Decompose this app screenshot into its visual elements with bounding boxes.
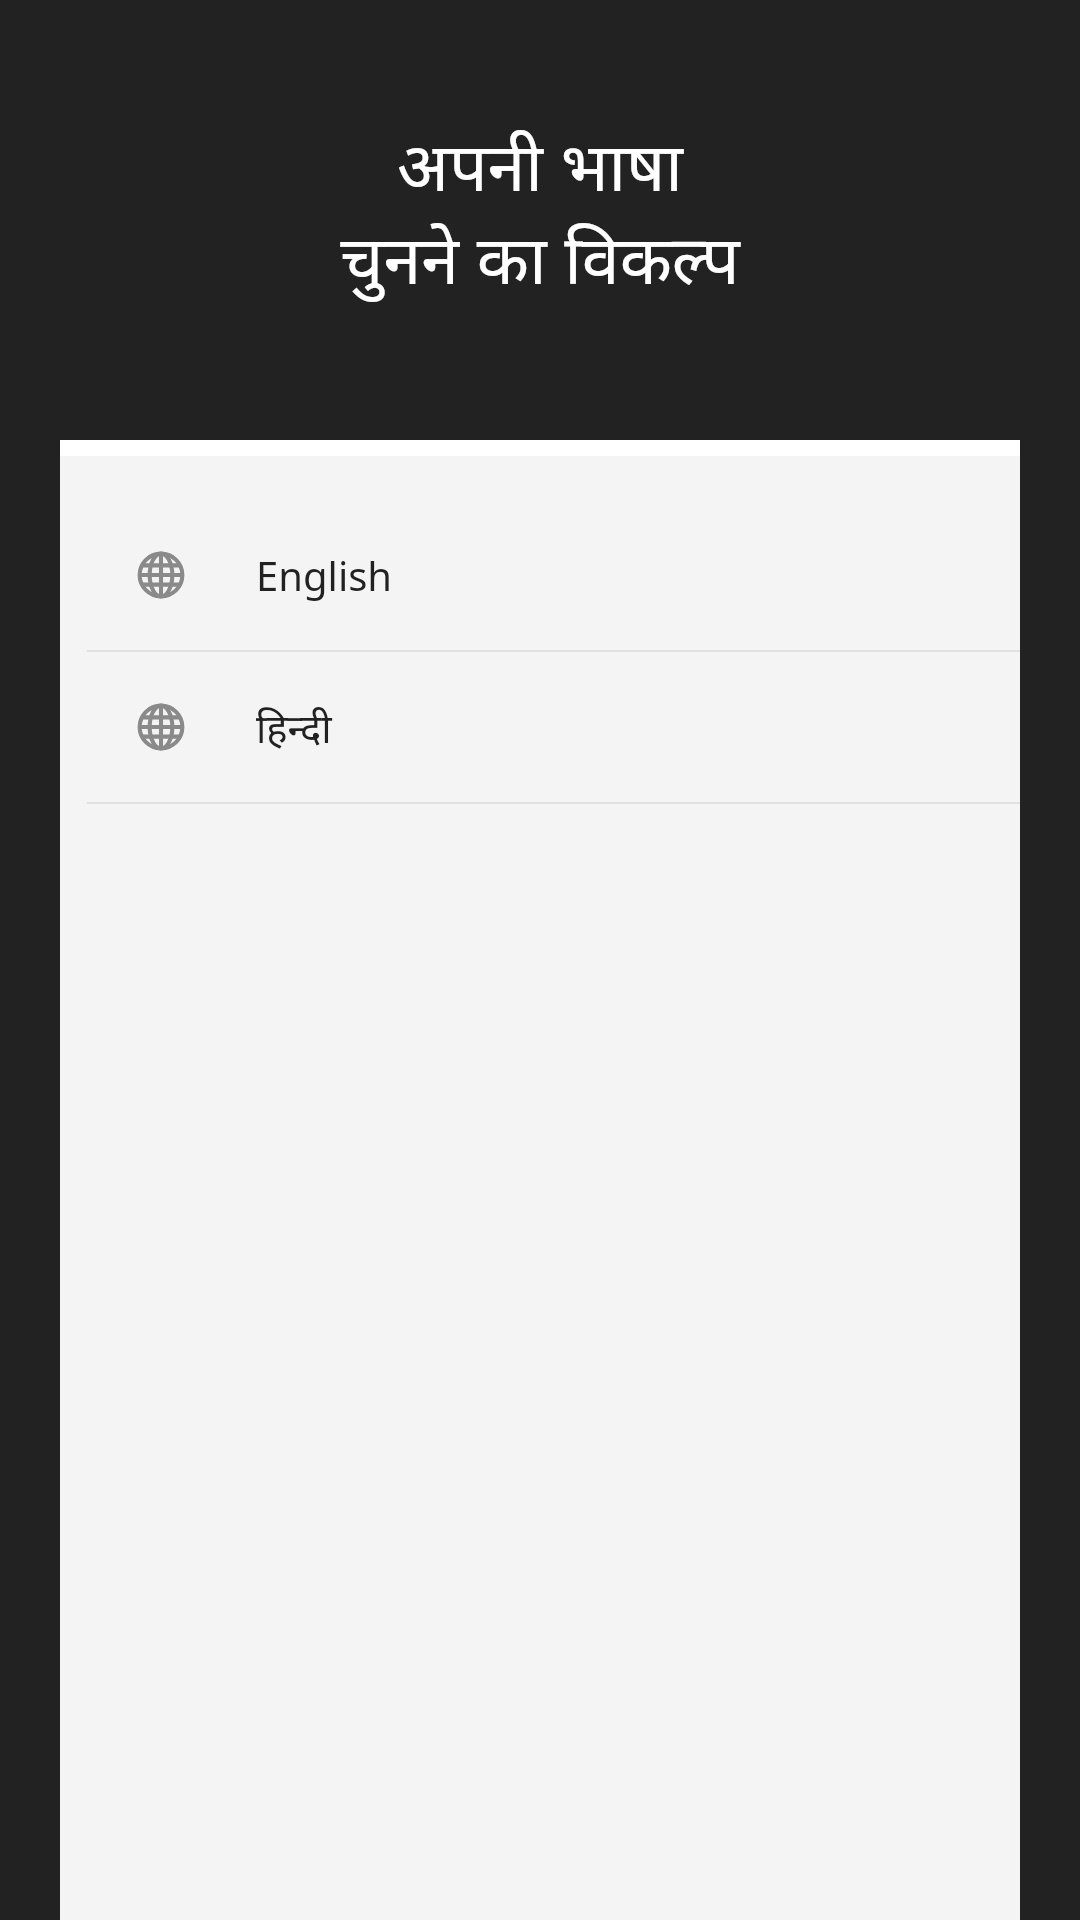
button[interactable]: Language — [60, 652, 1020, 802]
button[interactable]: Language — [60, 500, 1020, 650]
staticText: English — [256, 548, 393, 602]
staticText: अपनी भाषा — [397, 118, 683, 211]
staticText: चुनने का विकल्प — [340, 211, 740, 304]
other: Language — [137, 551, 185, 599]
other: Language — [137, 703, 185, 751]
staticText: हिन्दी — [256, 700, 332, 754]
